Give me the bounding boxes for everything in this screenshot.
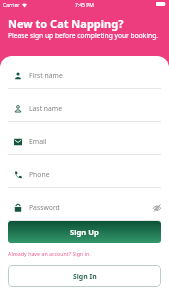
staticText: Phone [29,170,50,179]
button[interactable]: Sign Up [8,221,161,243]
button[interactable]: Last name [0,89,169,122]
staticText: Email [29,137,47,146]
staticText: Password [29,203,60,212]
button[interactable]: First name [0,56,169,89]
button[interactable]: Sign In [8,265,161,287]
button[interactable]: Password [0,188,169,221]
staticText: New to Cat Napping? [8,16,124,31]
staticText: Carrier [3,2,20,9]
other: Show password [153,204,161,212]
button[interactable]: Email [0,122,169,155]
staticText: 7:45 PM [75,2,94,9]
staticText: Sign Up [70,227,99,237]
button[interactable]: Already have an account? Sign in. [8,250,91,257]
staticText: Sign In [73,272,97,281]
button[interactable]: Phone [0,155,169,188]
staticText: Please sign up before completing your bo… [8,31,159,40]
staticText: First name [29,71,63,80]
staticText: Last name [29,104,63,113]
